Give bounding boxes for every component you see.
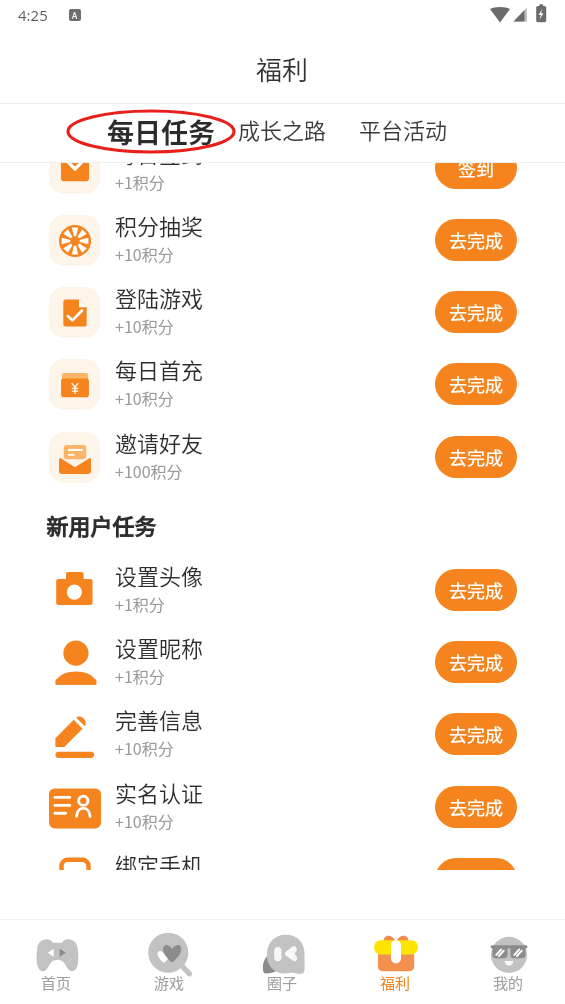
button[interactable]: 去完成: [435, 219, 517, 261]
staticText: 去完成: [449, 227, 503, 253]
button[interactable]: 去完成: [435, 786, 517, 828]
button[interactable]: 去完成: [435, 713, 517, 755]
button[interactable]: 首页: [0, 919, 113, 1004]
staticText: 我的: [493, 972, 524, 994]
button[interactable]: 福利: [339, 919, 452, 1004]
button[interactable]: 成长之路: [222, 104, 342, 163]
staticText: 新用户任务: [46, 509, 157, 541]
staticText: +1积分: [115, 664, 165, 687]
staticText: 去完成: [449, 299, 503, 325]
staticText: +10积分: [115, 386, 174, 409]
staticText: 平台活动: [359, 113, 448, 145]
button[interactable]: 绑定手机: [0, 843, 565, 870]
staticText: 游戏: [154, 972, 185, 994]
staticText: 去完成: [449, 371, 503, 397]
staticText: A: [72, 10, 78, 21]
staticText: +10积分: [115, 809, 174, 832]
button[interactable]: 每日首充: [0, 348, 565, 420]
staticText: 积分抽奖: [115, 209, 204, 241]
staticText: +10积分: [115, 736, 174, 759]
staticText: 4:25: [18, 5, 48, 25]
staticText: 邀请好友: [115, 426, 204, 458]
button[interactable]: 圈子: [226, 919, 339, 1004]
staticText: 每日任务: [107, 112, 215, 151]
button[interactable]: 平台活动: [343, 104, 463, 163]
staticText: 设置头像: [115, 559, 204, 591]
button[interactable]: 每日任务: [85, 104, 237, 163]
button[interactable]: 去完成: [435, 363, 517, 405]
button[interactable]: 签到: [435, 163, 517, 189]
staticText: 签到: [458, 163, 494, 181]
staticText: +10积分: [115, 242, 174, 265]
staticText: 设置昵称: [115, 631, 204, 663]
staticText: +1积分: [115, 170, 165, 193]
staticText: 绑定手机: [115, 848, 204, 870]
button[interactable]: 去完成: [435, 641, 517, 683]
staticText: 福利: [380, 972, 411, 994]
staticText: +1积分: [115, 592, 165, 615]
staticText: 每日首充: [115, 353, 204, 385]
button[interactable]: 去完成: [435, 858, 517, 870]
button[interactable]: 实名认证: [0, 771, 565, 843]
button[interactable]: 设置昵称: [0, 626, 565, 698]
staticText: 实名认证: [115, 776, 204, 808]
button[interactable]: 完善信息: [0, 698, 565, 770]
staticText: 去完成: [449, 794, 503, 820]
button[interactable]: 邀请好友: [0, 421, 565, 493]
button[interactable]: 积分抽奖: [0, 204, 565, 276]
button[interactable]: 登陆游戏: [0, 276, 565, 348]
button[interactable]: 去完成: [435, 569, 517, 611]
staticText: 登陆游戏: [115, 281, 204, 313]
staticText: 去完成: [449, 649, 503, 675]
staticText: +10积分: [115, 314, 174, 337]
staticText: 圈子: [267, 972, 298, 994]
button[interactable]: 游戏: [113, 919, 226, 1004]
staticText: 去完成: [449, 721, 503, 747]
staticText: 成长之路: [238, 113, 327, 145]
staticText: +100积分: [115, 459, 183, 482]
staticText: 首页: [41, 972, 72, 994]
button[interactable]: 设置头像: [0, 554, 565, 626]
staticText: 去完成: [449, 444, 503, 470]
staticText: 去完成: [449, 577, 503, 603]
button[interactable]: 每日签到: [0, 163, 565, 204]
button[interactable]: 去完成: [435, 291, 517, 333]
button[interactable]: 去完成: [435, 436, 517, 478]
button[interactable]: 我的: [452, 919, 565, 1004]
staticText: 福利: [256, 50, 309, 88]
staticText: 每日签到: [115, 163, 204, 169]
staticText: 完善信息: [115, 703, 204, 735]
